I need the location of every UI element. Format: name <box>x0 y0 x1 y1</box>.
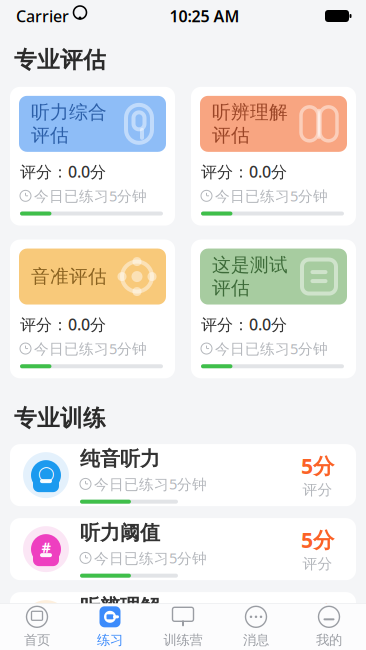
staticText: 评分 <box>302 629 332 647</box>
button[interactable]: 听力综合评估 <box>10 87 175 225</box>
button[interactable]: # <box>10 518 356 580</box>
staticText: 评分：0.0分 <box>20 161 106 182</box>
staticText: 这是测试评估 <box>212 254 288 299</box>
staticText: A <box>41 611 51 631</box>
staticText: 评分 <box>302 481 332 499</box>
staticText: 评分 <box>302 555 332 573</box>
staticText: 练习 <box>97 632 123 648</box>
staticText: 今日已练习5分钟 <box>94 474 207 494</box>
button[interactable]: 练习 <box>73 604 146 650</box>
staticText: 今日已练习5分钟 <box>215 186 328 206</box>
staticText: 我的 <box>316 632 342 648</box>
button[interactable]: A <box>10 592 356 650</box>
staticText: 今日已练习5分钟 <box>34 339 147 358</box>
button[interactable]: ◯ <box>10 444 356 506</box>
staticText: 今日已练习5分钟 <box>215 339 328 358</box>
staticText: 评分：0.0分 <box>201 314 287 335</box>
staticText: 5分 <box>301 525 334 554</box>
staticText: 纯音听力 <box>80 447 160 471</box>
staticText: 听辨理解 <box>80 595 160 619</box>
button[interactable]: 听辨理解评估 <box>191 87 356 225</box>
button[interactable]: 消息 <box>219 604 292 650</box>
staticText: 消息 <box>243 632 269 648</box>
staticText: 5分 <box>301 599 334 628</box>
button[interactable]: 这是测试评估 <box>191 240 356 378</box>
staticText: # <box>41 537 50 557</box>
staticText: 今日已练习5分钟 <box>94 622 207 642</box>
staticText: 听力阈值 <box>80 521 160 545</box>
staticText: 评分：0.0分 <box>20 314 106 335</box>
staticText: ◯ <box>38 465 54 481</box>
staticText: 评分：0.0分 <box>201 161 287 182</box>
button[interactable]: 首页 <box>0 604 73 650</box>
staticText: 专业评估 <box>14 46 106 74</box>
staticText: 今日已练习5分钟 <box>94 548 207 568</box>
staticText: Carrier <box>16 5 69 27</box>
button[interactable]: 我的 <box>292 604 365 650</box>
staticText: 首页 <box>24 632 50 648</box>
button[interactable]: 音准评估 <box>10 240 175 378</box>
staticText: 音准评估 <box>31 265 107 288</box>
button[interactable]: 训练营 <box>146 604 219 650</box>
staticText: 5分 <box>301 451 334 480</box>
staticText: 听辨理解评估 <box>212 101 288 147</box>
staticText: 今日已练习5分钟 <box>34 186 147 206</box>
staticText: 10:25 AM <box>169 5 239 27</box>
staticText: 专业训练 <box>14 404 106 432</box>
staticText: 训练营 <box>163 632 202 648</box>
staticText: 听力综合评估 <box>31 101 107 147</box>
